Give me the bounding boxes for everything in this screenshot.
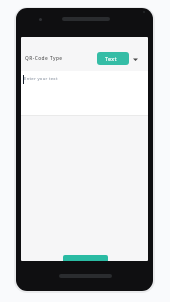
button[interactable] <box>133 58 138 61</box>
button[interactable]: Enter your text <box>21 71 148 115</box>
button[interactable] <box>63 255 108 261</box>
button[interactable]: Text <box>97 52 129 65</box>
staticText: Enter your text <box>24 76 58 82</box>
staticText: Text <box>105 55 117 62</box>
staticText: QR-Code Type <box>25 55 63 62</box>
